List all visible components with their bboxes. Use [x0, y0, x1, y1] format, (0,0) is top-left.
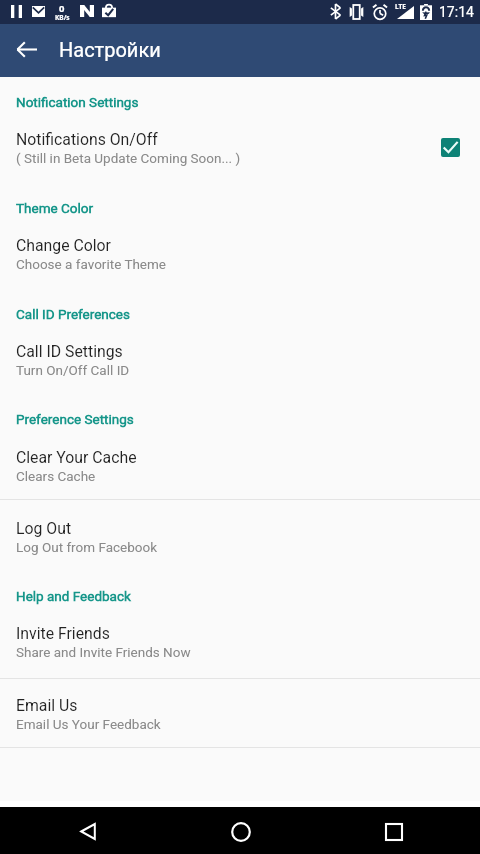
staticText: Clears Cache [16, 468, 96, 484]
staticText: Turn On/Off Call ID [16, 362, 130, 378]
staticText: Call ID Settings [16, 342, 123, 361]
button[interactable]: Home [216, 807, 263, 854]
staticText: Call ID Preferences [16, 306, 130, 322]
staticText: LTE [395, 2, 406, 11]
staticText: Log Out from Facebook [16, 539, 158, 555]
staticText: Email Us Your Feedback [16, 716, 161, 732]
staticText: Change Color [16, 236, 111, 255]
staticText: KB/s [55, 13, 70, 22]
button[interactable]: Change Color [0, 236, 480, 275]
button[interactable]: Notifications On/Off [0, 130, 480, 169]
button[interactable]: Clear Your Cache [0, 448, 480, 487]
staticText: 0 [59, 2, 65, 15]
button[interactable]: Recent apps [369, 807, 416, 854]
button[interactable]: Back [63, 807, 110, 854]
button[interactable]: Toggle notifications [441, 138, 460, 157]
staticText: Clear Your Cache [16, 448, 137, 467]
button[interactable]: Call ID Settings [0, 342, 480, 381]
staticText: Help and Feedback [16, 588, 131, 604]
staticText: Theme Color [16, 200, 94, 216]
staticText: Preference Settings [16, 411, 134, 427]
button[interactable]: Back [4, 27, 48, 71]
staticText: Notification Settings [16, 94, 139, 110]
staticText: Invite Friends [16, 624, 110, 643]
staticText: Choose a favorite Theme [16, 256, 167, 272]
staticText: Share and Invite Friends Now [16, 644, 191, 660]
button[interactable]: Log Out [0, 519, 480, 558]
staticText: 17:14 [439, 4, 474, 20]
staticText: Настройки [59, 38, 161, 61]
staticText: ( Still in Beta Update Coming Soon... ) [16, 150, 241, 166]
staticText: Email Us [16, 696, 78, 715]
button[interactable]: Invite Friends [0, 624, 480, 663]
staticText: Notifications On/Off [16, 130, 158, 149]
button[interactable]: Email Us [0, 696, 480, 735]
staticText: Log Out [16, 519, 72, 538]
